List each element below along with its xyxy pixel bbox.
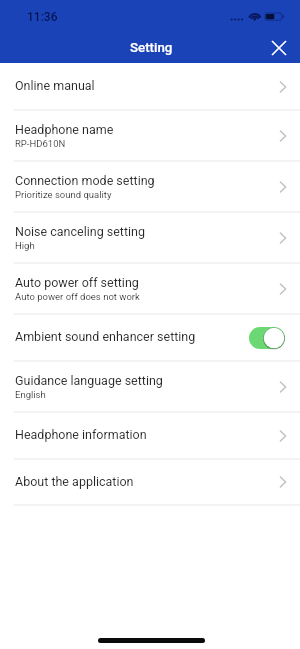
staticText: Online manual: [15, 78, 95, 93]
button[interactable]: Headphone name: [0, 110, 300, 161]
button[interactable]: Headphone information: [0, 412, 300, 459]
button[interactable]: Ambient sound enhancer toggle: [249, 327, 285, 349]
staticText: Guidance language setting: [15, 373, 163, 388]
staticText: Headphone name: [15, 122, 114, 137]
staticText: About the application: [15, 474, 134, 489]
staticText: Prioritize sound quality: [15, 189, 112, 200]
button[interactable]: Auto power off setting: [0, 263, 300, 314]
button[interactable]: Noise canceling setting: [0, 212, 300, 263]
button[interactable]: About the application: [0, 459, 300, 505]
staticText: 11:36: [27, 10, 58, 24]
button[interactable]: Close: [265, 34, 293, 62]
staticText: High: [15, 240, 35, 251]
staticText: RP-HD610N: [15, 138, 66, 149]
staticText: Setting: [130, 40, 173, 56]
staticText: Auto power off setting: [15, 275, 139, 290]
staticText: English: [15, 389, 46, 400]
staticText: Auto power off does not work: [15, 291, 140, 302]
button[interactable]: Guidance language setting: [0, 361, 300, 412]
staticText: Noise canceling setting: [15, 224, 146, 239]
staticText: Ambient sound enhancer setting: [15, 329, 196, 344]
staticText: Headphone information: [15, 427, 147, 442]
staticText: Connection mode setting: [15, 173, 155, 188]
button[interactable]: Online manual: [0, 63, 300, 110]
button[interactable]: Ambient sound enhancer setting: [0, 314, 300, 361]
button[interactable]: Connection mode setting: [0, 161, 300, 212]
